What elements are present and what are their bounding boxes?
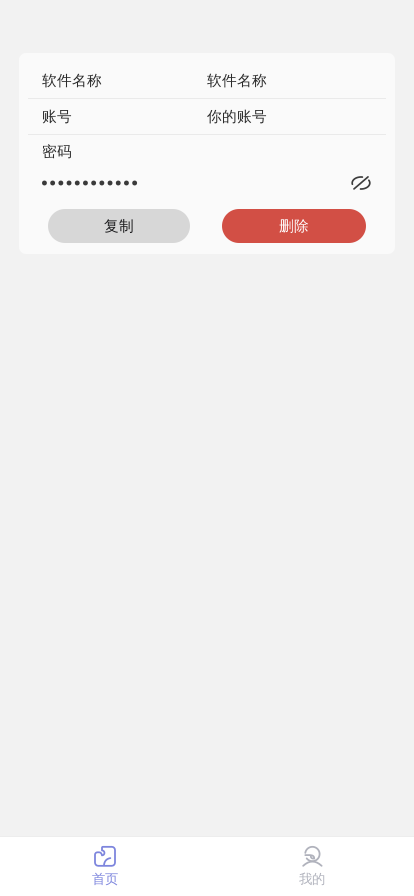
- staticText: 你的账号: [207, 107, 267, 125]
- button[interactable]: 我的: [210, 839, 414, 893]
- button[interactable]: 显示密码: [351, 175, 372, 190]
- button[interactable]: 删除: [222, 209, 366, 243]
- staticText: 我的: [299, 871, 325, 887]
- staticText: 删除: [279, 217, 309, 235]
- staticText: 密码: [42, 142, 72, 160]
- staticText: 软件名称: [42, 71, 102, 89]
- staticText: 账号: [42, 107, 72, 125]
- staticText: 软件名称: [207, 71, 267, 89]
- staticText: 首页: [92, 871, 118, 887]
- button[interactable]: 复制: [48, 209, 190, 243]
- button[interactable]: 首页: [0, 839, 210, 893]
- staticText: 复制: [104, 217, 134, 235]
